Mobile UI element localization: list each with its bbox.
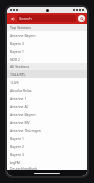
- staticText: Bayern 1: [10, 136, 25, 141]
- button[interactable]: Search: [17, 15, 76, 22]
- button[interactable]: Antenne Thüringen: [7, 126, 87, 134]
- staticText: Antenne 1: [10, 96, 27, 101]
- staticText: Search: [19, 16, 32, 21]
- staticText: Top Stations: [10, 25, 32, 30]
- staticText: Absolut Relax: [10, 88, 32, 93]
- button[interactable]: 1LIVE: [7, 78, 87, 86]
- button[interactable]: Bayern 3: [7, 39, 87, 47]
- staticText: bigFM: [10, 160, 20, 165]
- button[interactable]: Search: [78, 15, 85, 22]
- staticText: Antenne Bayern: [10, 33, 36, 38]
- staticText: Bayern 3: [10, 152, 25, 157]
- button[interactable]: Antenne AC: [7, 102, 87, 110]
- button[interactable]: bigFM: [7, 158, 87, 166]
- staticText: Bayern 1: [10, 49, 25, 54]
- staticText: Antenne Bayern: [10, 112, 36, 117]
- button[interactable]: Bayern 2: [7, 142, 87, 150]
- button[interactable]: Antenne 1: [7, 94, 87, 102]
- staticText: Antenne AC: [10, 104, 29, 109]
- button[interactable]: Antenne MV: [7, 118, 87, 126]
- button[interactable]: Antenne Bayern: [7, 31, 87, 39]
- staticText: 104.6 RTL: [10, 72, 26, 77]
- staticText: Bayern 2: [10, 144, 25, 149]
- staticText: Antenne Thüringen: [10, 128, 41, 133]
- staticText: Antenne MV: [10, 120, 30, 125]
- staticText: 1LIVE: [10, 80, 19, 85]
- button[interactable]: 104.6 RTL: [7, 70, 87, 78]
- button[interactable]: Bayern 1: [7, 47, 87, 55]
- button[interactable]: Deutschlandfunk: [7, 166, 87, 170]
- button[interactable]: Back: [9, 15, 17, 23]
- button[interactable]: Bayern 1: [7, 134, 87, 142]
- staticText: All Stations: [10, 64, 30, 69]
- button[interactable]: Antenne Bayern: [7, 110, 87, 118]
- button[interactable]: NDR 2: [7, 55, 87, 63]
- staticText: Deutschlandfunk: [10, 166, 38, 170]
- button[interactable]: Bayern 3: [7, 150, 87, 158]
- staticText: Bayern 3: [10, 41, 25, 46]
- staticText: NDR 2: [10, 57, 20, 62]
- button[interactable]: Absolut Relax: [7, 86, 87, 94]
